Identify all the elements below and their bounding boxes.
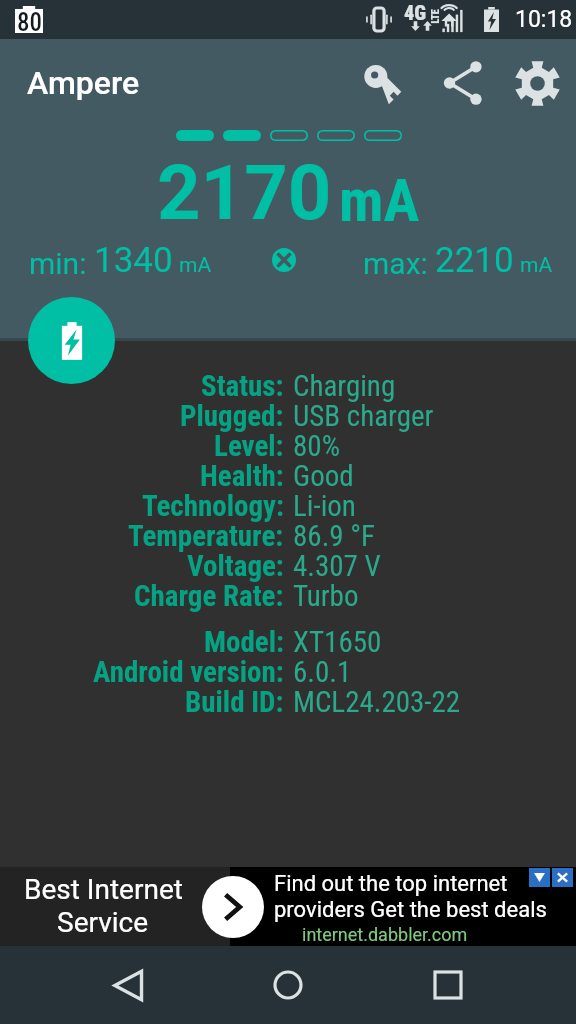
button[interactable]: Reset: [266, 242, 302, 278]
staticText: providers Get the best deals: [274, 897, 547, 923]
button[interactable]: Health:: [0, 459, 576, 493]
staticText: Temperature:: [128, 519, 284, 553]
staticText: Build ID:: [185, 685, 284, 719]
button[interactable]: Share: [431, 51, 495, 115]
button[interactable]: Android version:: [0, 655, 576, 689]
staticText: internet.dabbler.com: [302, 924, 468, 945]
button[interactable]: Recent apps: [408, 946, 488, 1024]
staticText: Turbo: [293, 579, 359, 613]
button[interactable]: Settings: [505, 51, 569, 115]
staticText: Service: [57, 906, 149, 939]
staticText: Voltage:: [187, 549, 284, 583]
button[interactable]: Unlock Pro: [352, 55, 416, 119]
staticText: Best Internet: [24, 873, 183, 906]
staticText: 80%: [293, 429, 340, 463]
staticText: Charging: [293, 369, 396, 403]
staticText: 1340: [94, 240, 173, 281]
staticText: 4G: [404, 1, 427, 24]
staticText: 10:18: [515, 6, 573, 33]
staticText: Model:: [204, 625, 284, 659]
button[interactable]: Charge Rate:: [0, 579, 576, 613]
button[interactable]: Charging: [28, 297, 115, 384]
staticText: XT1650: [293, 625, 382, 659]
button[interactable]: Back: [88, 946, 168, 1024]
staticText: 2210: [435, 240, 514, 281]
staticText: mA: [520, 253, 553, 278]
staticText: USB charger: [293, 399, 434, 433]
button[interactable]: Home: [248, 946, 328, 1024]
staticText: LTE: [429, 8, 441, 23]
button[interactable]: Plugged:: [0, 399, 576, 433]
staticText: 4.307 V: [293, 549, 381, 583]
staticText: Ampere: [27, 64, 140, 102]
staticText: Status:: [201, 369, 284, 403]
button[interactable]: Best Internet: [0, 867, 576, 947]
staticText: Plugged:: [180, 399, 284, 433]
staticText: mA: [179, 253, 212, 278]
staticText: Health:: [200, 459, 284, 493]
staticText: Good: [293, 459, 354, 493]
staticText: 2170: [157, 148, 332, 237]
button[interactable]: Voltage:: [0, 549, 576, 583]
button[interactable]: Temperature:: [0, 519, 576, 553]
staticText: 80: [17, 8, 42, 35]
staticText: Charge Rate:: [134, 579, 284, 613]
button[interactable]: Status:: [0, 369, 576, 403]
staticText: Level:: [214, 429, 284, 463]
staticText: Find out the top internet: [274, 871, 508, 897]
staticText: MCL24.203-22: [293, 685, 461, 719]
button[interactable]: Level:: [0, 429, 576, 463]
button[interactable]: Technology:: [0, 489, 576, 523]
staticText: max:: [363, 246, 428, 281]
button[interactable]: Model:: [0, 625, 576, 659]
staticText: Li-ion: [293, 489, 356, 523]
staticText: 86.9 °F: [293, 519, 376, 553]
button[interactable]: Build ID:: [0, 685, 576, 719]
staticText: Android version:: [93, 655, 284, 689]
staticText: Technology:: [142, 489, 284, 523]
staticText: mA: [339, 165, 420, 235]
staticText: min:: [29, 246, 87, 281]
staticText: 6.0.1: [293, 655, 352, 689]
